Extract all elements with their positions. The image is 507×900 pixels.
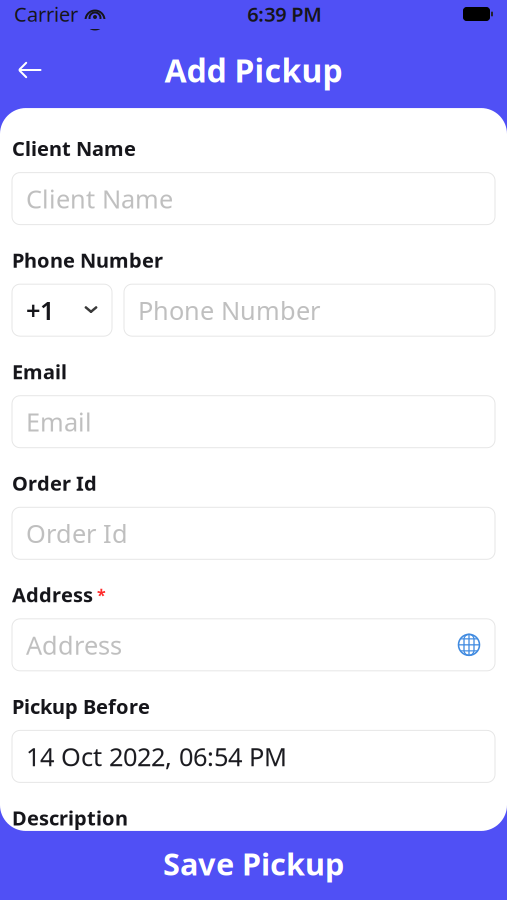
staticText: Phone Number: [12, 247, 163, 273]
staticText: Add Pickup: [164, 49, 342, 91]
staticText: Client Name: [26, 182, 173, 215]
staticText: Order Id: [12, 470, 97, 496]
staticText: 6:39 PM: [247, 1, 322, 27]
staticText: *: [97, 584, 106, 605]
staticText: Email: [12, 358, 67, 385]
button[interactable]: Country code +1: [12, 284, 112, 336]
staticText: Email: [26, 405, 92, 438]
staticText: Client Name: [12, 135, 136, 162]
button[interactable]: 14 Oct 2022, 06:54 PM: [12, 730, 495, 782]
staticText: +1: [26, 293, 54, 327]
staticText: Address: [26, 628, 122, 662]
button[interactable]: Back: [8, 48, 52, 92]
staticText: Phone Number: [138, 293, 320, 327]
staticText: Description: [12, 804, 128, 831]
staticText: Save Pickup: [163, 843, 344, 884]
button[interactable]: Client Name: [12, 173, 495, 225]
staticText: Carrier: [14, 1, 78, 27]
staticText: Pickup Before: [12, 693, 150, 719]
staticText: Order Id: [26, 516, 128, 550]
button[interactable]: Phone Number: [124, 284, 495, 336]
button[interactable]: Address: [12, 619, 495, 671]
button[interactable]: Save Pickup: [0, 827, 507, 900]
button[interactable]: Email: [12, 396, 495, 448]
staticText: Address: [12, 581, 93, 608]
staticText: 14 Oct 2022, 06:54 PM: [26, 740, 287, 773]
button[interactable]: Order Id: [12, 507, 495, 559]
